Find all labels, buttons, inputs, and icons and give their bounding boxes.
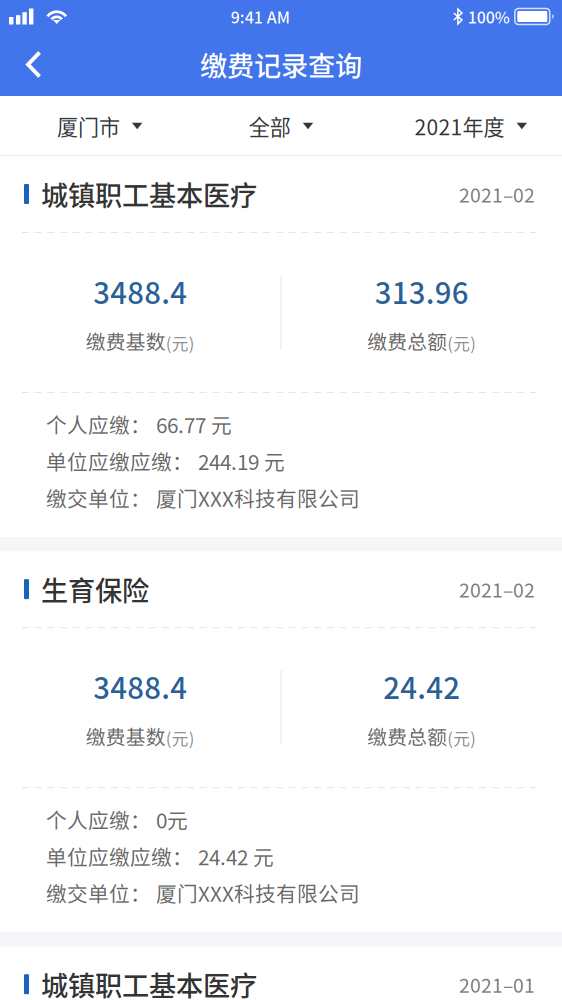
staticText: 厦门XXX科技有限公司 xyxy=(151,878,360,908)
staticText: 缴费总额 xyxy=(367,326,447,355)
staticText: 单位应缴应缴： xyxy=(46,841,193,871)
staticText: (元) xyxy=(166,331,195,355)
staticText: 2021–02 xyxy=(459,180,535,208)
staticText: 2021年度 xyxy=(415,111,505,141)
staticText: 24.42 xyxy=(383,665,460,708)
button[interactable]: Back xyxy=(10,39,58,89)
staticText: 24.42 元 xyxy=(193,841,274,871)
staticText: 313.96 xyxy=(375,270,469,312)
staticText: 生育保险 xyxy=(41,569,149,609)
button[interactable]: 2021年度 xyxy=(375,96,562,155)
staticText: 缴费记录查询 xyxy=(200,45,362,84)
staticText: 城镇职工基本医疗 xyxy=(41,964,257,1000)
staticText: 全部 xyxy=(249,111,291,141)
staticText: 缴交单位： xyxy=(46,483,151,513)
staticText: 3488.4 xyxy=(93,665,187,708)
staticText: 缴交单位： xyxy=(46,878,151,908)
staticText: 个人应缴： xyxy=(46,804,151,834)
staticText: 缴费总额 xyxy=(367,722,447,750)
staticText: 厦门市 xyxy=(57,111,120,141)
staticText: 66.77 元 xyxy=(151,409,232,439)
button[interactable]: 全部 xyxy=(187,96,375,155)
staticText: (元) xyxy=(447,726,476,750)
staticText: (元) xyxy=(447,331,476,355)
staticText: 2021–02 xyxy=(459,575,535,603)
staticText: 3488.4 xyxy=(93,270,187,312)
staticText: (元) xyxy=(166,726,195,750)
staticText: 0元 xyxy=(151,804,188,834)
staticText: 缴费基数 xyxy=(86,326,166,355)
staticText: 2021–01 xyxy=(459,970,535,998)
button[interactable]: 厦门市 xyxy=(0,96,187,155)
staticText: 单位应缴应缴： xyxy=(46,446,193,476)
staticText: 厦门XXX科技有限公司 xyxy=(151,483,360,513)
staticText: 城镇职工基本医疗 xyxy=(41,174,257,214)
staticText: 个人应缴： xyxy=(46,409,151,439)
staticText: 9:41 AM xyxy=(231,5,290,28)
staticText: 100% xyxy=(468,5,510,28)
staticText: 244.19 元 xyxy=(193,446,285,476)
staticText: 缴费基数 xyxy=(86,722,166,750)
